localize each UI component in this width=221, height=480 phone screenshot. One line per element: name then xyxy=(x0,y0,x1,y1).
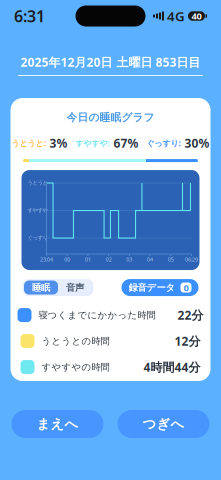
staticText: すやすやの時間 xyxy=(41,361,109,373)
staticText: うとうとの時間 xyxy=(41,335,109,347)
staticText: 03 xyxy=(126,256,132,263)
staticText: 3% xyxy=(49,135,67,151)
staticText: 22分 xyxy=(177,307,203,323)
button[interactable]: 睡眠 xyxy=(24,280,58,294)
staticText: 40 xyxy=(191,10,201,22)
button[interactable]: つぎへ xyxy=(117,410,209,438)
staticText: うとうと xyxy=(27,179,47,186)
button[interactable]: 音声 xyxy=(58,280,92,294)
staticText: 録音データ xyxy=(128,282,175,293)
button[interactable]: 寝つくまでにかかった時間 xyxy=(20,302,200,328)
staticText: 01 xyxy=(85,256,91,263)
staticText: 00 xyxy=(64,256,70,263)
staticText: 2025年12月20日 土曜日 853日目 xyxy=(20,54,200,70)
button[interactable]: まえへ xyxy=(11,410,103,438)
button[interactable]: すやすやの時間 xyxy=(20,354,200,380)
staticText: すやすや: xyxy=(75,138,109,148)
staticText: すやすや xyxy=(27,207,47,214)
button[interactable]: うとうとの時間 xyxy=(20,328,200,354)
staticText: ぐっすり: xyxy=(146,138,180,148)
staticText: 04 xyxy=(147,256,153,263)
staticText: つぎへ xyxy=(142,416,184,432)
staticText: 02 xyxy=(106,256,112,263)
staticText: 4時間44分 xyxy=(143,359,200,375)
staticText: 6:31 xyxy=(14,5,45,27)
staticText: 寝つくまでにかかった時間 xyxy=(38,309,155,321)
staticText: 0 xyxy=(183,281,188,294)
staticText: 4G xyxy=(167,7,185,25)
staticText: 睡眠 xyxy=(32,282,50,293)
staticText: 05 xyxy=(168,256,174,263)
staticText: 30% xyxy=(184,135,209,151)
staticText: ぐっすり xyxy=(27,234,47,241)
button[interactable]: 録音データ xyxy=(121,279,198,296)
staticText: 06:29 xyxy=(185,256,198,263)
staticText: うとうと: xyxy=(11,138,45,148)
staticText: 23:04 xyxy=(40,256,53,263)
staticText: まえへ xyxy=(36,416,78,432)
staticText: 12分 xyxy=(174,333,200,349)
staticText: 音声 xyxy=(66,282,84,293)
staticText: 今日の睡眠グラフ xyxy=(66,111,154,124)
staticText: 67% xyxy=(113,135,138,151)
